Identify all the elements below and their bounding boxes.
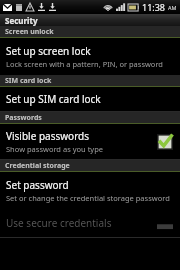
staticText: Set or change the credential storage pas…	[6, 193, 170, 203]
staticText: Passwords	[5, 113, 42, 123]
staticText: Set up SIM card lock	[6, 92, 101, 106]
button[interactable]: Use secure credentials	[0, 209, 180, 237]
button[interactable]: Visible passwords	[0, 124, 180, 159]
staticText: Show password as you type	[6, 144, 104, 154]
staticText: Credential storage	[5, 161, 70, 171]
staticText: AM	[168, 4, 177, 11]
other: Unchecked	[156, 214, 174, 232]
button[interactable]: Set password	[0, 172, 180, 209]
staticText: 11:38	[142, 1, 166, 13]
staticText: Visible passwords	[6, 129, 90, 143]
other: Checked	[156, 133, 174, 151]
staticText: Set up screen lock	[6, 44, 91, 58]
staticText: Screen unlock	[5, 27, 54, 37]
staticText: SIM card lock	[5, 76, 52, 86]
staticText: Lock screen with a pattern, PIN, or pass…	[6, 59, 163, 69]
staticText: Security	[5, 15, 38, 26]
button[interactable]: Set up screen lock	[0, 38, 180, 75]
button[interactable]: Set up SIM card lock	[0, 87, 180, 111]
staticText: Set password	[6, 178, 69, 192]
staticText: Use secure credentials	[6, 216, 112, 230]
